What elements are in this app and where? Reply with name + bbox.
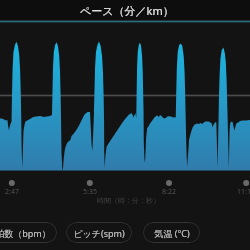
staticText: 心拍数（bpm）: [0, 227, 51, 239]
button[interactable]: 心拍数（bpm）: [0, 222, 57, 243]
staticText: 時間（時：分：秒）: [97, 196, 160, 205]
button[interactable]: ペース（分／km）: [0, 0, 250, 20]
staticText: 5:35: [83, 187, 97, 196]
staticText: 気温 (°C): [154, 227, 190, 239]
button[interactable]: ピッチ(spm): [66, 222, 132, 243]
staticText: 11:10: [237, 187, 250, 196]
staticText: ピッチ(spm): [73, 227, 125, 239]
button[interactable]: 気温 (°C): [143, 222, 200, 243]
staticText: ペース（分／km）: [80, 3, 174, 18]
staticText: 2:47: [5, 187, 19, 196]
staticText: 8:22: [162, 187, 176, 196]
